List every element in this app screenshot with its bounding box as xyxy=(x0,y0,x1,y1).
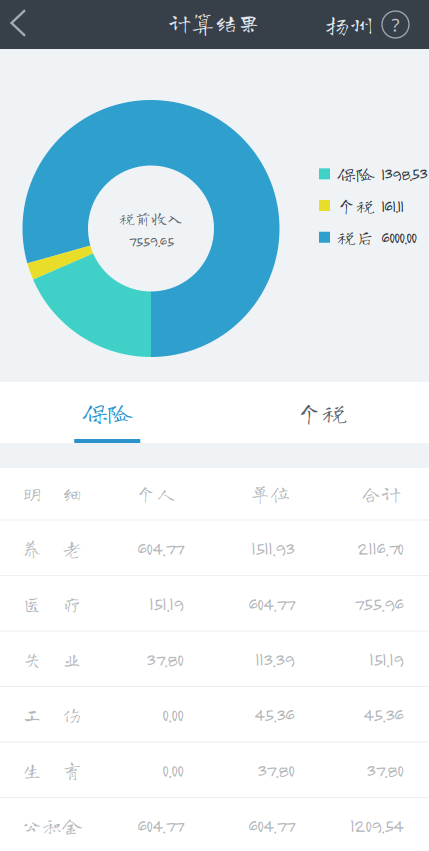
staticText: 1511.93 xyxy=(251,537,294,560)
staticText: 151.19 xyxy=(369,648,403,670)
staticText: 失 业 xyxy=(22,649,82,669)
staticText: 45.36 xyxy=(363,703,403,726)
staticText: 医 疗 xyxy=(22,594,82,614)
staticText: 37.80 xyxy=(366,759,403,781)
staticText: 个税 xyxy=(337,196,375,215)
staticText: 税后 xyxy=(337,228,375,247)
staticText: 计算结果 xyxy=(168,12,260,34)
staticText: 6000.00 xyxy=(381,227,416,247)
staticText: 工 伤 xyxy=(22,704,82,724)
staticText: 生 育 xyxy=(22,760,82,780)
staticText: 7559.65 xyxy=(128,232,173,250)
staticText: 2116.70 xyxy=(357,537,403,560)
staticText: 公积金 xyxy=(22,815,82,835)
staticText: 0.00 xyxy=(162,703,183,726)
staticText: 604.77 xyxy=(248,592,294,615)
button[interactable]: Back xyxy=(0,0,50,49)
staticText: 37.80 xyxy=(257,759,294,781)
staticText: 45.36 xyxy=(254,703,294,726)
staticText: 0.00 xyxy=(162,759,183,781)
staticText: 604.77 xyxy=(137,537,183,560)
staticText: 113.39 xyxy=(255,648,294,670)
staticText: 明 细 xyxy=(22,484,82,504)
staticText: 个税 xyxy=(297,400,347,425)
staticText: 保险 xyxy=(82,400,132,425)
staticText: 161.11 xyxy=(381,195,403,215)
staticText: 755.96 xyxy=(354,592,403,615)
staticText: 个人 xyxy=(136,484,176,504)
button[interactable]: 个税 xyxy=(214,382,429,443)
staticText: 养 老 xyxy=(22,538,82,558)
staticText: 604.77 xyxy=(248,814,294,837)
staticText: 扬州 xyxy=(325,12,373,36)
staticText: 保险 xyxy=(337,164,375,183)
staticText: ? xyxy=(391,12,399,37)
staticText: 税前收入 xyxy=(119,210,183,226)
staticText: 604.77 xyxy=(137,814,183,837)
button[interactable]: 保险 xyxy=(0,382,214,443)
staticText: 合计 xyxy=(361,484,401,504)
staticText: 151.19 xyxy=(149,592,183,615)
staticText: 1209.54 xyxy=(350,814,403,837)
button[interactable]: 扬州, help xyxy=(0,0,429,49)
staticText: 37.80 xyxy=(146,648,183,670)
staticText: 单位 xyxy=(250,484,290,504)
staticText: 1398.53 xyxy=(381,164,427,184)
